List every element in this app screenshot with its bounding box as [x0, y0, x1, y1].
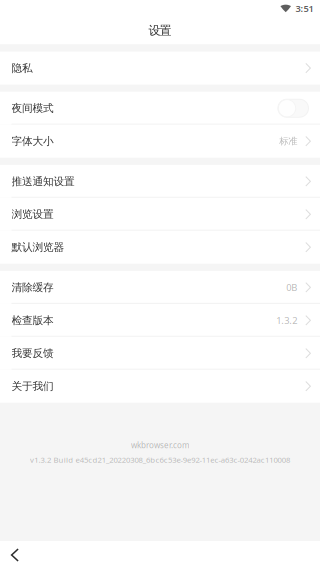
staticText: 夜间模式 [11, 102, 54, 115]
button[interactable]: 字体大小 [0, 125, 320, 158]
button[interactable]: 夜间模式 [0, 92, 320, 125]
staticText: v1.3.2 Build e45cd21_20220308_6bc6c53e-9… [30, 455, 290, 465]
staticText: 浏览设置 [11, 208, 54, 221]
staticText: 0B [286, 281, 297, 294]
staticText: 标准 [279, 135, 297, 147]
staticText: 3:51 [295, 2, 313, 15]
staticText: 设置 [148, 23, 172, 38]
staticText: 关于我们 [11, 380, 54, 393]
staticText: 检查版本 [11, 314, 54, 327]
button[interactable]: 浏览设置 [0, 198, 320, 231]
staticText: 推送通知设置 [11, 175, 75, 188]
staticText: wkbrowser.com [131, 440, 189, 451]
button[interactable]: 推送通知设置 [0, 165, 320, 198]
staticText: 隐私 [11, 61, 33, 75]
button[interactable]: 我要反馈 [0, 337, 320, 370]
button[interactable]: Back [0, 541, 40, 569]
button[interactable]: 隐私 [0, 52, 320, 85]
button[interactable]: 检查版本 [0, 304, 320, 337]
staticText: 1.3.2 [276, 314, 297, 326]
button[interactable]: 关于我们 [0, 370, 320, 403]
staticText: 清除缓存 [11, 281, 54, 294]
staticText: 字体大小 [11, 135, 54, 148]
button[interactable]: 默认浏览器 [0, 231, 320, 264]
button[interactable]: 清除缓存 [0, 271, 320, 304]
staticText: 默认浏览器 [11, 241, 64, 254]
staticText: 我要反馈 [11, 347, 54, 360]
